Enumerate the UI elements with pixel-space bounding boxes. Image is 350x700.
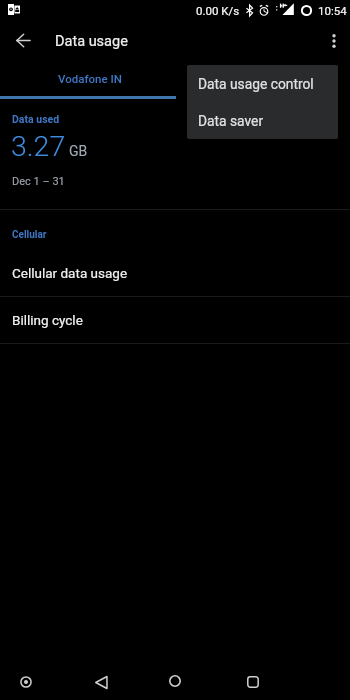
staticText: Cellular data usage [12, 265, 128, 281]
button[interactable]: Back [88, 669, 114, 695]
button[interactable]: Vodafone IN [0, 58, 176, 99]
staticText: GB [69, 143, 88, 159]
staticText: Billing cycle [12, 312, 83, 328]
staticText: Cellular [12, 229, 47, 241]
button[interactable]: More options [320, 27, 348, 55]
staticText: Dec 1 – 31 [12, 175, 65, 188]
button[interactable]: Assistant [13, 669, 39, 695]
button[interactable]: Data saver [187, 102, 338, 139]
staticText: Vodafone IN [58, 72, 122, 85]
staticText: Data usage [55, 33, 128, 50]
staticText: Data saver [198, 113, 264, 129]
staticText: 0.00 K/s [196, 4, 240, 17]
button[interactable]: Home [162, 668, 188, 694]
button[interactable]: Data usage control [187, 65, 338, 102]
staticText: Data used [12, 113, 60, 125]
staticText: Data usage control [198, 76, 314, 92]
button[interactable]: Recents [240, 669, 266, 695]
button[interactable]: Back [10, 27, 36, 53]
staticText: 10:54 [318, 4, 347, 17]
staticText: 3.27 [11, 130, 66, 163]
button[interactable]: Billing cycle [0, 297, 350, 343]
button[interactable]: Cellular data usage [0, 250, 350, 296]
